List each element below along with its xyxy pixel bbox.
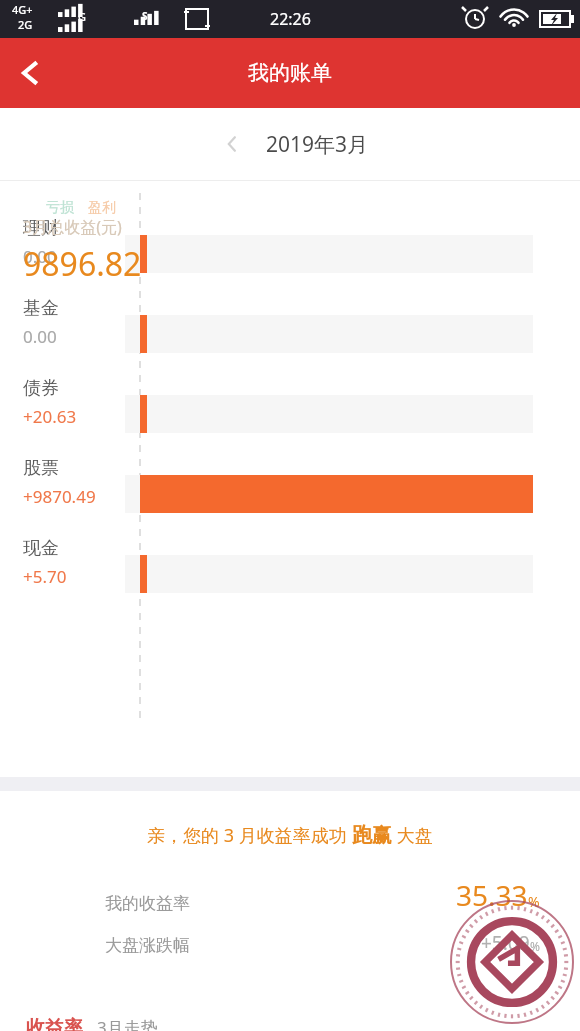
- staticText: +20.63: [23, 405, 77, 428]
- staticText: 0.00: [23, 325, 57, 348]
- button[interactable]: Back: [0, 43, 60, 103]
- staticText: G: [78, 9, 86, 24]
- button[interactable]: 3月走势: [97, 1016, 158, 1031]
- staticText: 4G+: [12, 2, 33, 17]
- staticText: 我的收益率: [105, 893, 190, 914]
- button[interactable]: 我的收益率: [105, 876, 540, 914]
- staticText: 9896.82: [23, 242, 142, 286]
- staticText: S: [142, 9, 148, 23]
- button[interactable]: 大盘涨跌幅: [105, 930, 540, 956]
- staticText: +5.70: [23, 565, 67, 588]
- staticText: 0.00: [23, 245, 57, 268]
- staticText: 大盘: [392, 823, 433, 848]
- button[interactable]: 理财: [23, 217, 59, 240]
- staticText: +5.09: [481, 930, 530, 956]
- staticText: %: [528, 892, 540, 911]
- staticText: %: [530, 938, 540, 954]
- staticText: 我的账单: [248, 60, 332, 86]
- staticText: 大盘涨跌幅: [105, 935, 190, 956]
- button[interactable]: Previous month: [212, 124, 252, 164]
- button[interactable]: 收益率: [26, 1016, 83, 1031]
- staticText: 跑赢: [352, 823, 392, 848]
- button[interactable]: 债券: [23, 377, 59, 400]
- staticText: +9870.49: [23, 485, 96, 508]
- button[interactable]: 基金: [23, 297, 59, 320]
- staticText: 3月总收益(元): [23, 216, 122, 238]
- staticText: 盈利: [88, 199, 116, 217]
- staticText: 2G: [18, 17, 33, 32]
- staticText: 亏损: [46, 199, 74, 217]
- staticText: 35.33: [456, 876, 528, 914]
- staticText: 亲，您的 3 月收益率成功: [147, 823, 352, 848]
- staticText: 22:26: [270, 8, 311, 30]
- button[interactable]: 2019年3月: [266, 130, 369, 159]
- button[interactable]: 股票: [23, 457, 59, 480]
- button[interactable]: 现金: [23, 537, 59, 560]
